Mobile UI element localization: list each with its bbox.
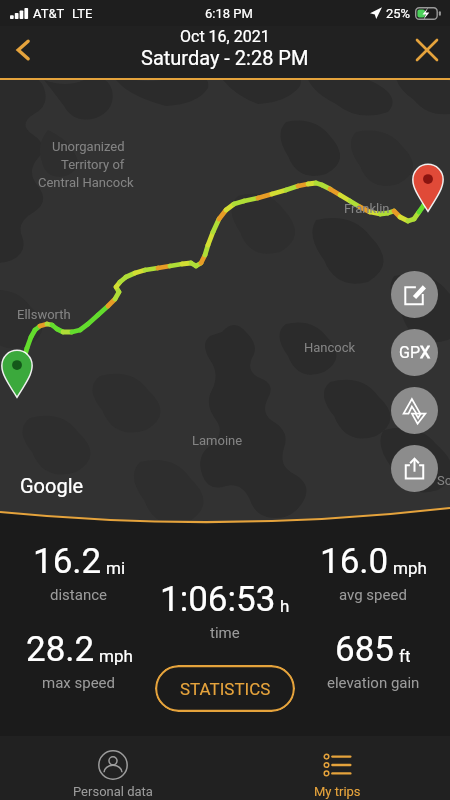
staticText: 16.2 <box>33 541 102 582</box>
staticText: Saturday - 2:28 PM <box>141 46 309 69</box>
staticText: mi <box>106 558 126 578</box>
staticText: Google <box>20 474 84 497</box>
staticText: 6:18 PM <box>205 6 253 21</box>
staticText: max speed <box>42 674 116 692</box>
staticText: GP <box>399 343 420 362</box>
staticText: So <box>437 473 450 488</box>
button[interactable]: Back <box>0 27 46 73</box>
button[interactable]: Elevation profile <box>391 387 438 434</box>
staticText: mph <box>393 558 427 578</box>
button[interactable]: My trips <box>225 736 450 800</box>
button[interactable]: Edit trip <box>391 271 438 318</box>
staticText: 685 <box>335 629 395 670</box>
staticText: mph <box>99 646 133 666</box>
staticText: X <box>420 343 431 362</box>
staticText: Personal data <box>73 784 153 799</box>
button[interactable]: Personal data <box>0 736 225 800</box>
staticText: elevation gain <box>327 674 420 692</box>
button[interactable]: Export GPX <box>391 329 438 376</box>
staticText: Unorganized <box>52 139 125 154</box>
staticText: avg speed <box>339 586 407 604</box>
staticText: time <box>210 624 240 642</box>
staticText: Hancock <box>304 340 356 355</box>
staticText: distance <box>50 586 108 604</box>
staticText: AT&T <box>33 6 65 21</box>
staticText: Territory of <box>61 157 125 172</box>
staticText: Ellsworth <box>17 307 71 322</box>
staticText: STATISTICS <box>180 679 271 699</box>
staticText: 16.0 <box>320 541 389 582</box>
staticText: h <box>280 596 290 616</box>
staticText: 1:06:53 <box>160 579 276 620</box>
button[interactable]: Share <box>391 445 438 492</box>
staticText: Oct 16, 2021 <box>180 27 270 46</box>
button[interactable]: STATISTICS <box>155 665 295 712</box>
staticText: 25% <box>386 6 411 21</box>
staticText: Central Hancock <box>38 175 134 190</box>
staticText: My trips <box>314 784 361 799</box>
button[interactable]: Close <box>404 27 450 73</box>
staticText: 28.2 <box>26 629 95 670</box>
staticText: ft <box>399 646 411 666</box>
staticText: Lamoine <box>192 433 243 448</box>
staticText: LTE <box>72 6 93 21</box>
staticText: Franklin <box>344 201 390 216</box>
